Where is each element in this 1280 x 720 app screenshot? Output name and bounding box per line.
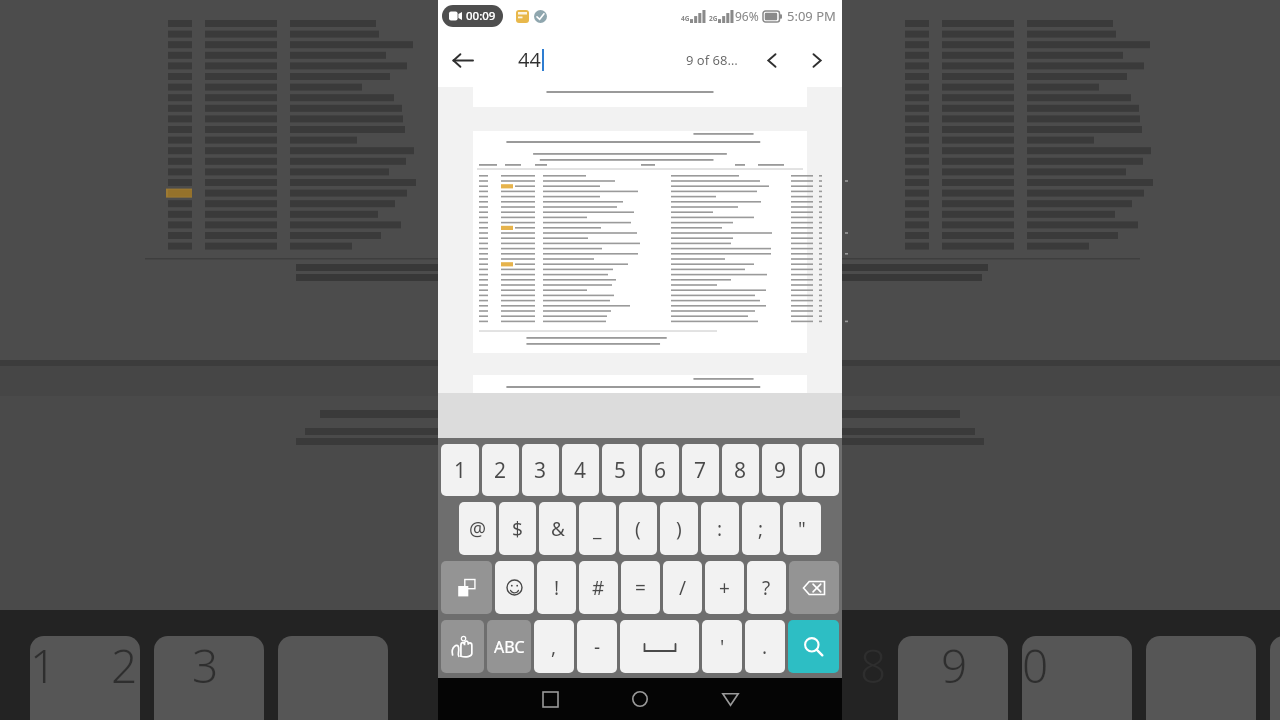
button[interactable]: $ bbox=[499, 502, 536, 555]
button[interactable]: . bbox=[745, 620, 785, 673]
staticText: 4 bbox=[574, 456, 587, 485]
button[interactable]: 5 bbox=[602, 444, 639, 496]
button[interactable]: _ bbox=[579, 502, 616, 555]
button[interactable]: Search bbox=[788, 620, 839, 673]
staticText: ? bbox=[762, 575, 771, 601]
button[interactable] bbox=[438, 87, 842, 393]
staticText: $ bbox=[512, 516, 523, 542]
button[interactable]: / bbox=[663, 561, 702, 614]
button[interactable]: & bbox=[539, 502, 576, 555]
staticText: & bbox=[551, 516, 565, 542]
button[interactable]: 3 bbox=[522, 444, 559, 496]
button[interactable]: " bbox=[783, 502, 821, 555]
staticText: ; bbox=[758, 516, 764, 542]
button[interactable]: 7 bbox=[682, 444, 719, 496]
button[interactable]: 2 bbox=[482, 444, 519, 496]
button[interactable]: Symbols page 2 bbox=[441, 561, 492, 614]
button[interactable]: Back bbox=[438, 36, 486, 84]
button[interactable]: 44 bbox=[518, 46, 686, 73]
button[interactable]: Space bbox=[620, 620, 699, 673]
staticText: ' bbox=[720, 634, 725, 660]
staticText: 1 bbox=[30, 634, 57, 697]
staticText: 9 of 68… bbox=[686, 51, 738, 69]
staticText: 5 bbox=[614, 456, 627, 485]
staticText: ) bbox=[676, 516, 682, 542]
button[interactable]: 4 bbox=[562, 444, 599, 496]
button[interactable]: ABC bbox=[487, 620, 531, 673]
staticText: _ bbox=[593, 516, 602, 542]
button[interactable]: Backspace bbox=[789, 561, 839, 614]
button[interactable]: Next result bbox=[794, 38, 838, 82]
staticText: , bbox=[551, 634, 557, 660]
staticText: 5:09 PM bbox=[787, 7, 836, 25]
staticText: 2 bbox=[494, 456, 507, 485]
staticText: 8 bbox=[734, 456, 747, 485]
staticText: ! bbox=[554, 575, 560, 601]
staticText: 7 bbox=[694, 456, 707, 485]
button[interactable]: ; bbox=[742, 502, 780, 555]
staticText: / bbox=[679, 575, 687, 601]
button[interactable]: ' bbox=[702, 620, 742, 673]
button[interactable]: 0 bbox=[802, 444, 839, 496]
button[interactable]: Back bbox=[699, 678, 761, 720]
staticText: 9 bbox=[941, 634, 968, 697]
staticText: 0 bbox=[814, 456, 827, 485]
button[interactable]: - bbox=[577, 620, 617, 673]
staticText: - bbox=[594, 634, 601, 660]
button[interactable]: Handwriting bbox=[441, 620, 484, 673]
staticText: 4G bbox=[681, 14, 690, 23]
staticText: 1 bbox=[454, 456, 467, 485]
staticText: 6 bbox=[654, 456, 667, 485]
button[interactable]: = bbox=[621, 561, 660, 614]
staticText: ABC bbox=[494, 636, 525, 658]
button[interactable]: 8 bbox=[722, 444, 759, 496]
staticText: = bbox=[635, 575, 646, 601]
button[interactable]: ! bbox=[537, 561, 576, 614]
staticText: : bbox=[717, 516, 723, 542]
button[interactable]: Emoji bbox=[495, 561, 534, 614]
staticText: 2G bbox=[709, 14, 718, 23]
staticText: 3 bbox=[192, 634, 219, 697]
button[interactable]: 1 bbox=[441, 444, 479, 496]
button[interactable]: ) bbox=[660, 502, 698, 555]
button[interactable]: : bbox=[701, 502, 739, 555]
staticText: " bbox=[798, 516, 806, 542]
staticText: # bbox=[592, 575, 605, 601]
staticText: 9 bbox=[774, 456, 787, 485]
button[interactable]: 6 bbox=[642, 444, 679, 496]
staticText: ( bbox=[635, 516, 641, 542]
staticText: 44 bbox=[518, 46, 541, 73]
staticText: 2 bbox=[111, 634, 138, 697]
button[interactable]: Recent apps bbox=[519, 678, 581, 720]
button[interactable]: @ bbox=[459, 502, 496, 555]
button[interactable]: ? bbox=[747, 561, 786, 614]
button[interactable]: Previous result bbox=[750, 38, 794, 82]
staticText: 0 bbox=[1022, 634, 1049, 697]
staticText: 00:09 bbox=[466, 8, 496, 24]
staticText: 3 bbox=[534, 456, 547, 485]
button[interactable]: + bbox=[705, 561, 744, 614]
button[interactable]: 9 bbox=[762, 444, 799, 496]
staticText: @ bbox=[469, 516, 487, 542]
staticText: . bbox=[762, 634, 768, 660]
button[interactable]: ( bbox=[619, 502, 657, 555]
staticText: 8 bbox=[860, 634, 887, 697]
button[interactable]: Home bbox=[609, 678, 671, 720]
staticText: + bbox=[719, 575, 730, 601]
button[interactable]: # bbox=[579, 561, 618, 614]
staticText: 96% bbox=[735, 8, 759, 24]
button[interactable]: , bbox=[534, 620, 574, 673]
